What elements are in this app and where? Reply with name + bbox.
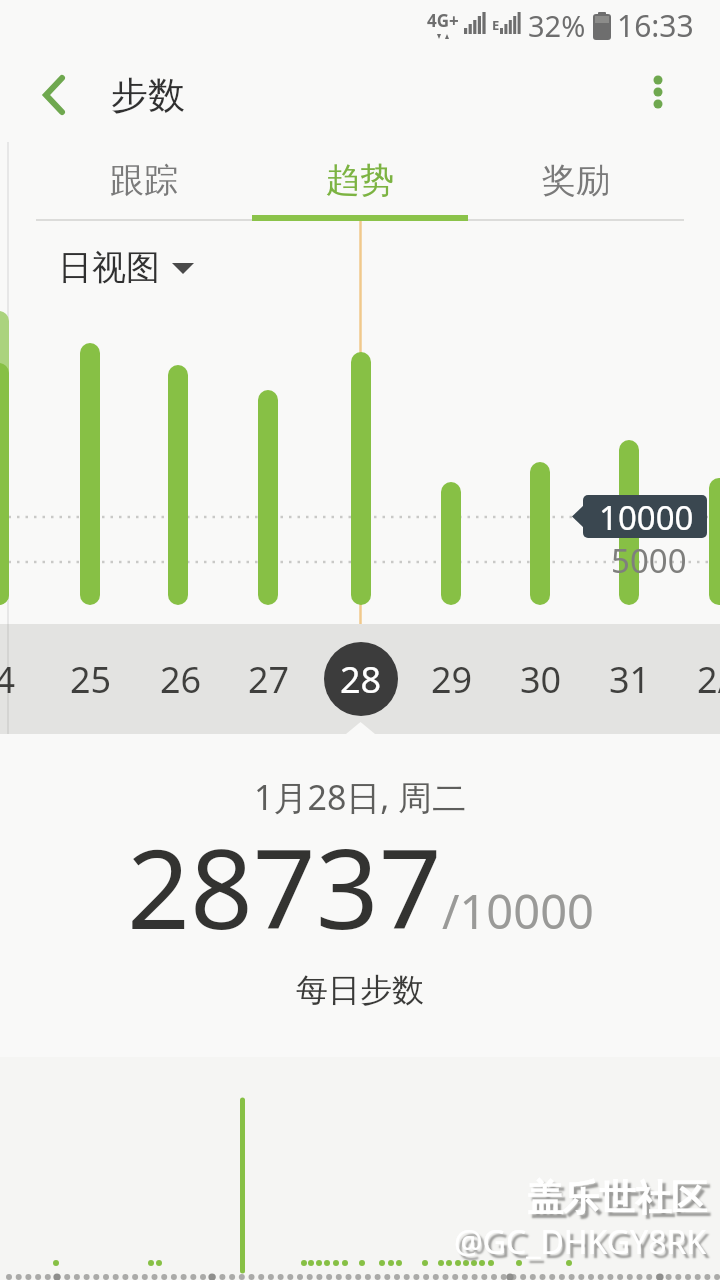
staticText: 10000	[599, 495, 694, 540]
button[interactable]: 27	[248, 655, 290, 704]
staticText: 跟踪	[110, 159, 178, 202]
staticText: 趋势	[326, 159, 394, 202]
button[interactable]: 奖励	[468, 140, 684, 221]
button[interactable]: 24	[0, 655, 16, 704]
staticText: 1月28日, 周二	[254, 774, 467, 820]
staticText: 4G+	[427, 9, 459, 32]
button[interactable]	[30, 71, 78, 119]
staticText: 每日步数	[296, 970, 424, 1010]
button[interactable]	[636, 65, 680, 125]
staticText: 奖励	[542, 159, 610, 202]
button[interactable]: 30	[520, 655, 562, 704]
button[interactable]: 25	[70, 655, 112, 704]
staticText: 盖乐世社区	[527, 1175, 707, 1220]
staticText: 5000	[611, 538, 687, 583]
staticText: 28	[340, 655, 382, 704]
button[interactable]: 31	[609, 655, 651, 704]
button[interactable]: 28	[324, 642, 398, 716]
button[interactable]: 29	[431, 655, 473, 704]
staticText: E	[492, 16, 500, 34]
staticText: /10000	[442, 879, 594, 943]
staticText: 日视图	[58, 246, 160, 289]
staticText: 步数	[111, 72, 185, 119]
button[interactable]: 趋势	[252, 140, 468, 221]
button[interactable]: 2/1	[697, 655, 720, 704]
staticText: @GC_DHKGY8RK	[454, 1220, 707, 1264]
staticText: 16:33	[617, 5, 694, 46]
button[interactable]: 日视图	[58, 246, 194, 289]
staticText: 32%	[528, 6, 586, 45]
button[interactable]: 26	[160, 655, 202, 704]
staticText: 28737	[127, 811, 442, 961]
button[interactable]: 跟踪	[36, 140, 252, 221]
